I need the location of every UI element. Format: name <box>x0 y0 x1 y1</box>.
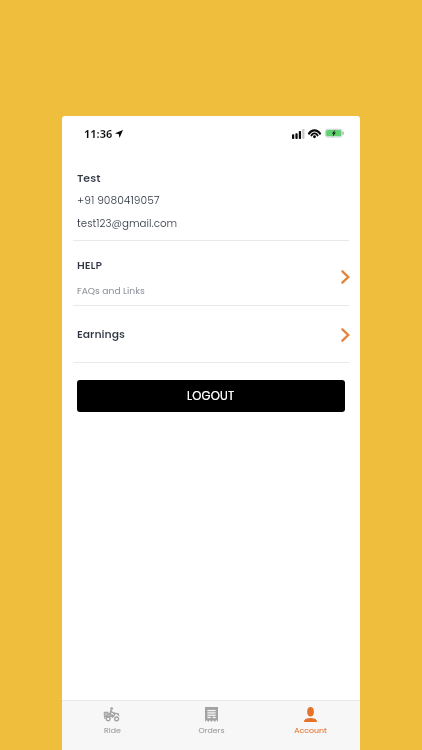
button[interactable]: LOGOUT <box>77 380 345 412</box>
staticText: 11:36 <box>84 126 113 141</box>
staticText: Orders <box>198 725 225 736</box>
staticText: HELP <box>77 258 103 273</box>
button[interactable]: Orders <box>162 700 261 750</box>
button[interactable]: Account <box>261 700 360 750</box>
button[interactable]: Ride <box>62 700 162 750</box>
staticText: Earnings <box>77 327 125 342</box>
other: Orders <box>205 707 218 722</box>
other: Ride <box>104 707 120 721</box>
staticText: Account <box>294 725 327 736</box>
staticText: +91 9080419057 <box>77 193 160 208</box>
staticText: Test <box>77 170 101 185</box>
staticText: test123@gmail.com <box>77 216 178 230</box>
staticText: Ride <box>104 725 121 736</box>
button[interactable] <box>73 306 349 362</box>
staticText: LOGOUT <box>187 388 235 404</box>
staticText: FAQs and Links <box>77 284 145 297</box>
other: Account <box>304 707 317 722</box>
button[interactable] <box>73 241 349 304</box>
